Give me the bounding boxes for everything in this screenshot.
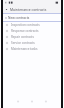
staticText: Maintenance tasks [11, 47, 38, 51]
button[interactable]: Repair contracts [3, 34, 61, 40]
staticText: Repair contracts [11, 35, 34, 39]
button[interactable]: Inspection contracts [3, 22, 61, 28]
staticText: Response contracts [11, 29, 39, 33]
staticText: Service contracts [11, 41, 35, 45]
staticText: Inspection contracts [11, 23, 40, 27]
button[interactable]: Maintenance tasks [3, 46, 61, 52]
button[interactable]: Service contracts [3, 40, 61, 46]
button[interactable]: Response contracts [3, 28, 61, 34]
staticText: Maintenance contracts [10, 7, 47, 12]
staticText: New contracts [8, 16, 30, 20]
button[interactable]: Navigate up [3, 6, 10, 13]
button[interactable]: New contracts [3, 14, 61, 21]
